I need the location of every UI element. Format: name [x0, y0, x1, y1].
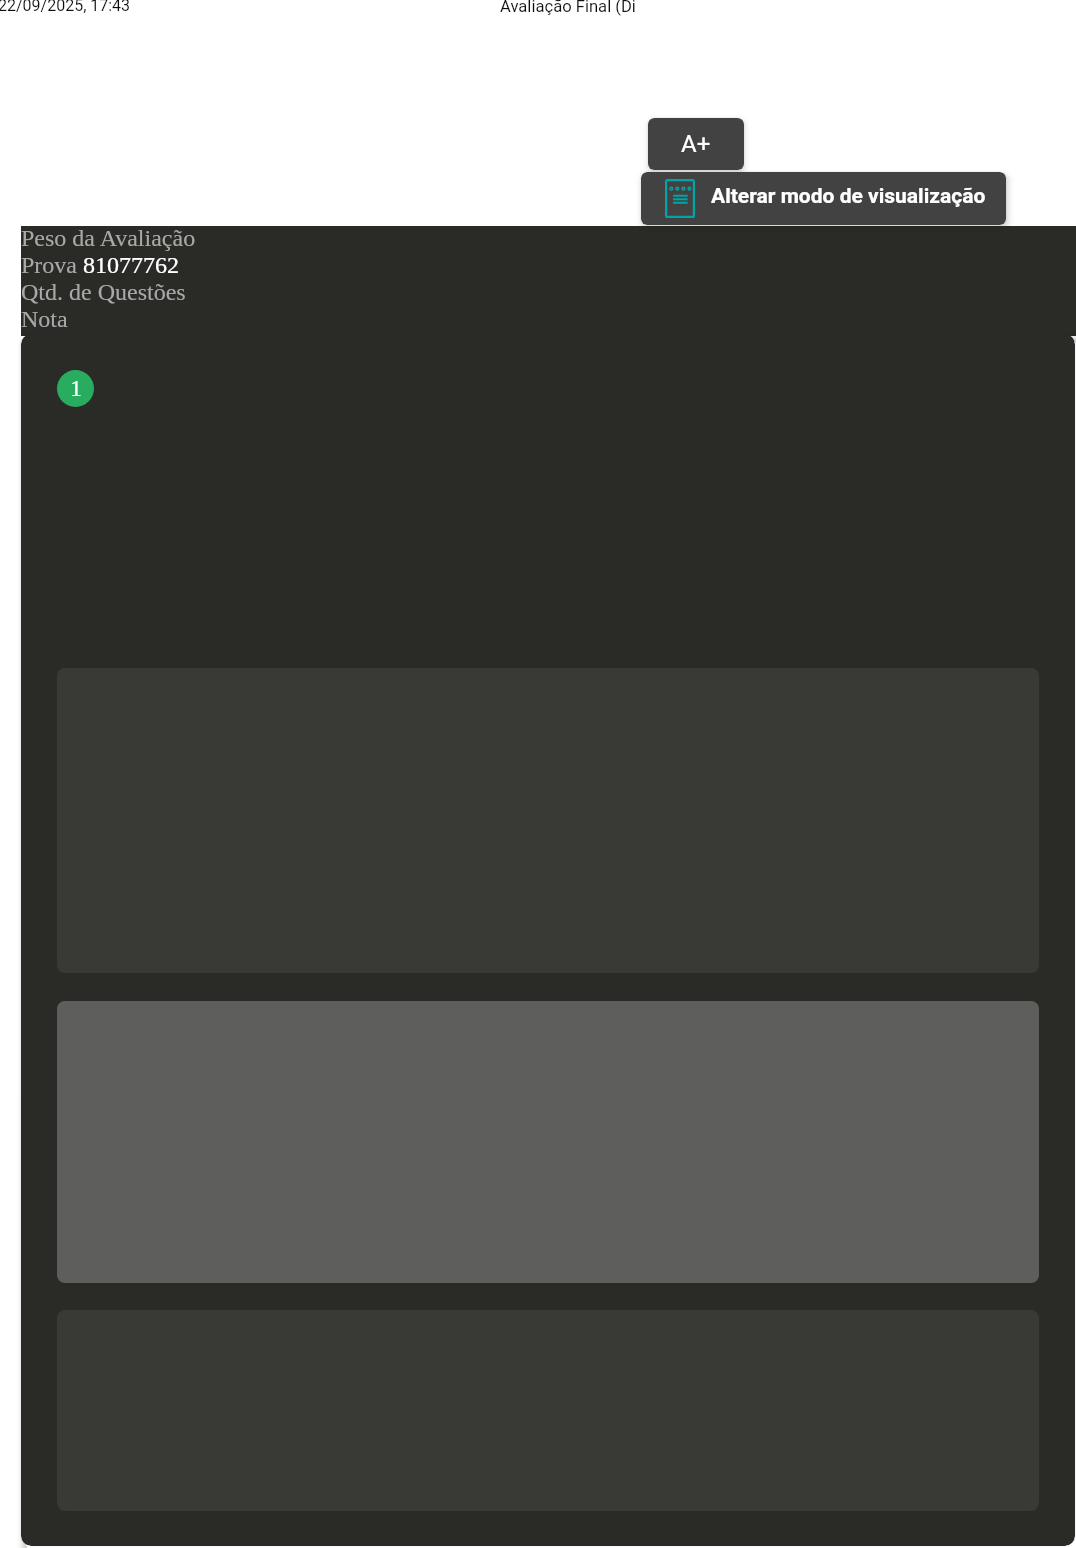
staticText: Prova	[21, 252, 83, 279]
staticText: Qtd. de Questões	[21, 279, 186, 306]
staticText: 1	[70, 375, 82, 402]
staticText: Peso da Avaliação	[21, 225, 196, 252]
staticText: 22/09/2025, 17:43	[0, 0, 131, 15]
button[interactable]: Alterar modo de visualização	[641, 172, 1006, 225]
staticText: 81077762	[83, 252, 179, 279]
staticText: Nota	[21, 306, 68, 333]
staticText: A+	[681, 130, 711, 158]
button[interactable]: 1	[57, 370, 94, 407]
staticText: Avaliação Final (Di	[500, 0, 636, 16]
staticText: Alterar modo de visualização	[711, 184, 986, 209]
other: Alterar modo de visualização	[665, 179, 695, 218]
button[interactable]: Aumentar fonte	[648, 118, 744, 170]
